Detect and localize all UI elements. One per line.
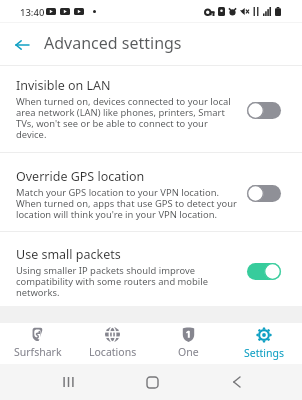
staticText: Using smaller IP packets should improve … [16,264,208,298]
staticText: Match your GPS location to your VPN loca… [16,186,237,220]
staticText: Override GPS location [16,168,145,185]
button[interactable]: Switch on [247,263,281,280]
staticText: Locations [89,345,137,359]
staticText: Surfshark [14,345,62,359]
button[interactable]: One [150,323,226,363]
button[interactable]: Surfshark [0,323,75,363]
button[interactable]: Settings [226,323,302,363]
button[interactable]: Switch off [247,185,281,202]
staticText: Advanced settings [44,32,182,54]
button[interactable]: Switch off [247,102,281,119]
staticText: 13:40 [20,6,45,19]
button[interactable]: Back [9,32,34,57]
staticText: Invisible on LAN [16,77,111,94]
staticText: One [178,345,199,359]
button[interactable]: Recent apps [50,368,86,396]
button[interactable]: Locations [75,323,150,363]
staticText: When turned on, devices connected to you… [16,95,231,140]
button[interactable]: Back [218,368,254,396]
staticText: Use small packets [16,246,121,263]
button[interactable]: Home [134,368,170,396]
staticText: Settings [244,346,284,360]
